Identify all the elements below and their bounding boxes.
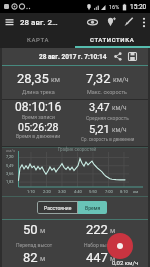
- button[interactable]: КАРТА: [0, 31, 75, 48]
- staticText: 15:20: [130, 3, 147, 11]
- staticText: км: [51, 76, 60, 84]
- staticText: 3,66: [6, 171, 14, 176]
- staticText: Набор высоты: [84, 242, 119, 248]
- staticText: График скоростей: [58, 147, 97, 152]
- staticText: 3,47: [89, 101, 110, 114]
- staticText: СТАТИСТИКА: [90, 36, 135, 43]
- staticText: км/ч: [112, 104, 127, 112]
- button[interactable]: [114, 52, 122, 61]
- staticText: 2:20: [43, 189, 51, 194]
- staticText: Время в движении: [16, 133, 61, 139]
- staticText: Средняя скорость: [86, 115, 129, 121]
- staticText: 1,83: [6, 179, 14, 184]
- staticText: КАРТА: [27, 36, 49, 43]
- staticText: 447: [86, 250, 108, 265]
- button[interactable]: [124, 17, 134, 27]
- staticText: 50: [23, 222, 38, 237]
- button[interactable]: [107, 233, 133, 259]
- staticText: км/ч: [113, 76, 129, 84]
- staticText: м: [110, 227, 116, 235]
- staticText: 0,02 км/ч: [112, 259, 139, 266]
- staticText: км/ч: [6, 148, 15, 153]
- button[interactable]: [128, 52, 137, 61]
- staticText: 3:30: [58, 189, 66, 194]
- staticText: Макс. скорость: [87, 89, 128, 95]
- staticText: 05:26:28: [18, 121, 59, 133]
- staticText: м: [40, 255, 46, 263]
- staticText: 16%: [109, 4, 120, 10]
- staticText: 28 авг. 2017 г. 7:10:14: [39, 53, 107, 61]
- staticText: 1:10: [27, 189, 35, 194]
- staticText: 28,35: [17, 71, 49, 86]
- staticText: 28 авг. 2…: [20, 18, 58, 27]
- button[interactable]: [142, 17, 146, 28]
- button[interactable]: Расстояние: [37, 201, 78, 214]
- staticText: Ср. скорость в движении: [81, 137, 135, 142]
- staticText: 7,32: [86, 71, 111, 86]
- staticText: 8:10: [120, 189, 128, 194]
- staticText: 82: [23, 250, 38, 265]
- staticText: 5:50: [89, 189, 97, 194]
- staticText: м: [110, 255, 116, 263]
- staticText: 5,49: [6, 163, 14, 168]
- button[interactable]: [106, 17, 116, 27]
- button[interactable]: СТАТИСТИКА: [75, 31, 150, 48]
- button[interactable]: [5, 18, 14, 26]
- staticText: 4:40: [74, 189, 82, 194]
- staticText: км: [133, 189, 139, 194]
- staticText: км/ч: [112, 126, 127, 134]
- staticText: Длина трека: [22, 89, 55, 95]
- button[interactable]: Время: [78, 201, 107, 214]
- staticText: м: [40, 227, 46, 235]
- staticText: 5,21: [89, 123, 110, 136]
- staticText: Время записи: [22, 114, 55, 120]
- staticText: 08:10:16: [15, 100, 62, 114]
- staticText: Расстояние: [44, 205, 72, 211]
- staticText: Время: [85, 205, 101, 211]
- staticText: 222: [86, 222, 108, 237]
- button[interactable]: [87, 17, 98, 27]
- staticText: 7:00: [105, 189, 113, 194]
- staticText: 7,20: [6, 154, 14, 159]
- staticText: Перепад высот: [16, 242, 53, 248]
